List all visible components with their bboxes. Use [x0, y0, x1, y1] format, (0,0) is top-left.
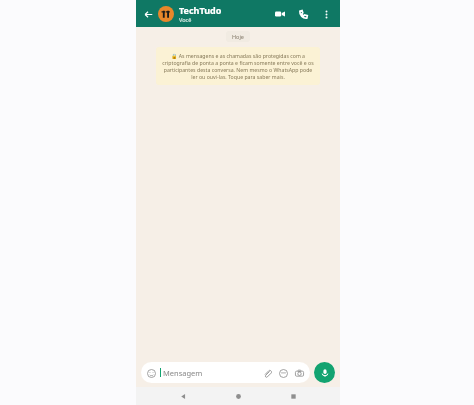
button[interactable]: Attach — [262, 368, 272, 378]
button[interactable]: Back — [141, 7, 155, 21]
button[interactable]: TechTudo — [179, 4, 273, 23]
button[interactable]: Emoji — [141, 362, 310, 383]
button[interactable]: Emoji — [146, 368, 156, 378]
button[interactable]: Video call — [273, 7, 287, 21]
staticText: TechTudo — [179, 4, 222, 16]
button[interactable]: Back — [175, 388, 191, 404]
staticText: Mensagem — [163, 368, 203, 378]
button[interactable]: Record voice message — [314, 362, 335, 383]
staticText: 🔒 As mensagens e as chamadas são protegi… — [162, 52, 314, 80]
staticText: Hoje — [232, 33, 244, 40]
button[interactable]: Profile photo — [158, 6, 174, 22]
button[interactable]: 🔒 As mensagens e as chamadas são protegi… — [156, 47, 320, 85]
button[interactable]: Voice call — [296, 7, 310, 21]
button[interactable]: More options — [319, 7, 333, 21]
button[interactable]: Recent apps — [285, 388, 301, 404]
button[interactable]: Sticker — [278, 368, 288, 378]
button[interactable]: Home — [230, 388, 246, 404]
staticText: Você — [179, 16, 192, 23]
button[interactable]: Hoje — [226, 31, 250, 42]
button[interactable]: Camera — [294, 368, 304, 378]
